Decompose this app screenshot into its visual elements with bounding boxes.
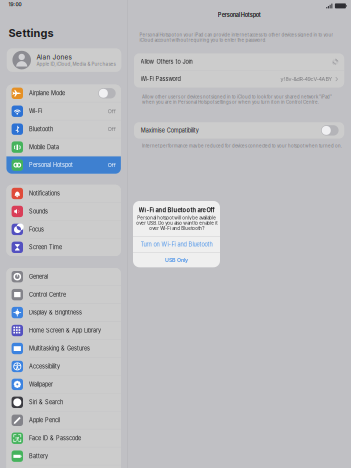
staticText: Allow other users or devices not signed …	[142, 94, 332, 105]
staticText: Alan Jones	[36, 53, 71, 61]
staticText: Wi-Fi	[29, 108, 42, 115]
button[interactable]: Bluetooth	[6, 120, 121, 138]
staticText: Internet performance may be reduced for …	[142, 143, 342, 148]
staticText: Accessibility	[29, 363, 60, 370]
staticText: Home Screen & App Library	[29, 327, 101, 334]
staticText: Apple Pencil	[29, 417, 60, 424]
staticText: Allow Others to Join	[140, 58, 192, 65]
button[interactable]: Airplane Mode	[6, 85, 121, 102]
staticText: 19:00	[9, 2, 22, 7]
button[interactable]: Apple Pencil	[6, 412, 121, 429]
button[interactable]: Wallpaper	[6, 376, 121, 393]
staticText: Display & Brightness	[29, 309, 82, 316]
staticText: General	[29, 273, 48, 280]
button[interactable]: Allow Others to Join	[134, 53, 344, 70]
staticText: Off	[108, 108, 116, 114]
button[interactable]: Wi-Fi Password	[134, 71, 344, 87]
staticText: Settings	[8, 26, 53, 40]
staticText: Personal Hotspot	[29, 162, 73, 168]
staticText: Wallpaper	[29, 381, 53, 388]
staticText: Siri & Search	[29, 399, 63, 406]
button[interactable]: USB Only	[133, 253, 220, 267]
button[interactable]: Personal Hotspot	[6, 156, 121, 174]
button[interactable]: Siri & Search	[6, 394, 121, 411]
staticText: Notifications	[29, 190, 60, 197]
button[interactable]: Turn on Wi-Fi and Bluetooth	[133, 237, 220, 252]
staticText: Off	[108, 162, 116, 168]
staticText: Turn on Wi-Fi and Bluetooth	[140, 241, 212, 248]
staticText: Off	[108, 126, 116, 132]
staticText: Wi-Fi Password	[140, 76, 180, 82]
button[interactable]: Display & Brightness	[6, 304, 121, 321]
button[interactable]: Wi-Fi	[6, 102, 121, 120]
button[interactable]: Battery	[6, 447, 121, 465]
button[interactable]: General	[6, 268, 121, 285]
staticText: Personal hotspot will only be available …	[136, 215, 217, 231]
staticText: Sounds	[29, 208, 48, 215]
button[interactable]: Multitasking & Gestures	[6, 340, 121, 357]
button[interactable]: Notifications	[6, 185, 121, 202]
button[interactable]: Face ID & Passcode	[6, 429, 121, 447]
button[interactable]: Alan Jones	[7, 48, 121, 72]
staticText: Bluetooth	[29, 126, 53, 132]
staticText: Personal Hotspot	[218, 12, 261, 18]
staticText: Multitasking & Gestures	[29, 345, 90, 352]
button[interactable]: Screen Time	[6, 239, 121, 256]
staticText: Wi-Fi and Bluetooth are Off	[138, 207, 214, 213]
button[interactable]: Control Centre	[6, 286, 121, 303]
staticText: Apple ID, iCloud, Media & Purchases	[36, 61, 115, 67]
staticText: Mobile Data	[29, 144, 59, 150]
staticText: Focus	[29, 226, 44, 233]
staticText: Control Centre	[29, 291, 66, 298]
staticText: Battery	[29, 453, 48, 459]
staticText: Personal Hotspot on your iPad can provid…	[139, 32, 333, 43]
button[interactable]: Focus	[6, 221, 121, 238]
staticText: Maximise Compatibility	[141, 127, 199, 134]
button[interactable]: Home Screen & App Library	[6, 322, 121, 339]
staticText: Face ID & Passcode	[29, 435, 81, 442]
button[interactable]: Accessibility	[6, 358, 121, 375]
staticText: Airplane Mode	[29, 90, 65, 97]
staticText: y!8v-&dR-49cV-4ABY	[280, 76, 332, 82]
staticText: Screen Time	[29, 244, 62, 251]
staticText: USB Only	[165, 257, 188, 263]
button[interactable]: Sounds	[6, 203, 121, 220]
button[interactable]: Mobile Data	[6, 138, 121, 156]
